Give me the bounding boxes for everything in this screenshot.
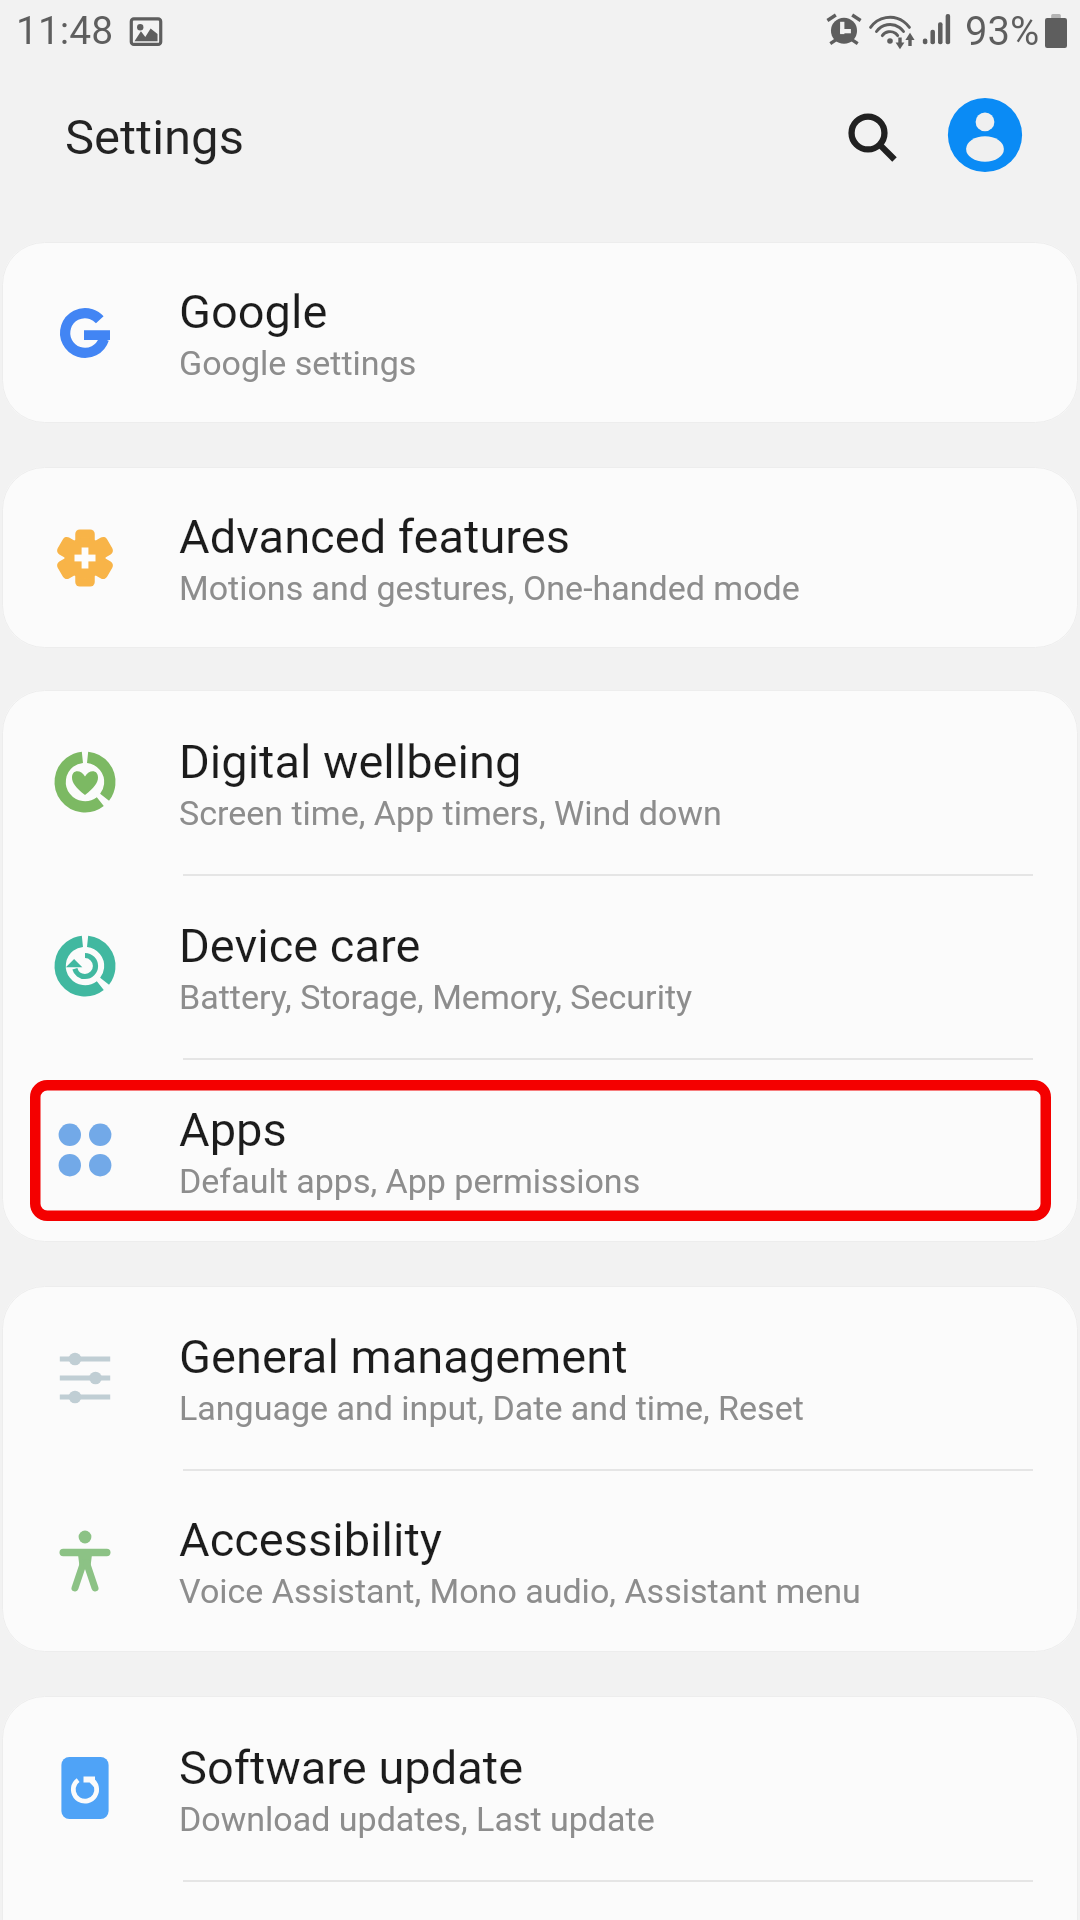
staticText: Google settings — [179, 343, 417, 383]
staticText: Default apps, App permissions — [179, 1161, 641, 1201]
staticText: Voice Assistant, Mono audio, Assistant m… — [179, 1571, 861, 1611]
button[interactable]: Software update — [2, 1696, 1078, 1880]
staticText: 11:48 — [16, 8, 114, 54]
staticText: Screen time, App timers, Wind down — [179, 793, 722, 833]
staticText: General management — [179, 1329, 628, 1384]
staticText: Settings — [65, 109, 244, 166]
staticText: Device care — [179, 918, 421, 973]
staticText: Language and input, Date and time, Reset — [179, 1388, 804, 1428]
staticText: Accessibility — [179, 1512, 443, 1567]
staticText: Apps — [179, 1102, 287, 1157]
button[interactable]: Device care — [2, 874, 1078, 1058]
button[interactable]: Account — [944, 73, 1026, 155]
button[interactable]: Google — [2, 242, 1078, 423]
button[interactable]: Advanced features — [2, 467, 1078, 648]
staticText: Google — [179, 284, 328, 339]
button[interactable]: Search — [822, 71, 914, 163]
staticText: Download updates, Last update — [179, 1799, 655, 1839]
staticText: Software update — [179, 1740, 524, 1795]
staticText: 93% — [965, 8, 1040, 55]
button[interactable]: Apps — [2, 1058, 1078, 1242]
staticText: Digital wellbeing — [179, 734, 522, 789]
staticText: Advanced features — [179, 509, 571, 564]
button[interactable]: Accessibility — [2, 1469, 1078, 1652]
button[interactable]: Digital wellbeing — [2, 690, 1078, 874]
staticText: Battery, Storage, Memory, Security — [179, 977, 693, 1017]
button[interactable]: General management — [2, 1286, 1078, 1469]
staticText: Motions and gestures, One-handed mode — [179, 568, 800, 608]
